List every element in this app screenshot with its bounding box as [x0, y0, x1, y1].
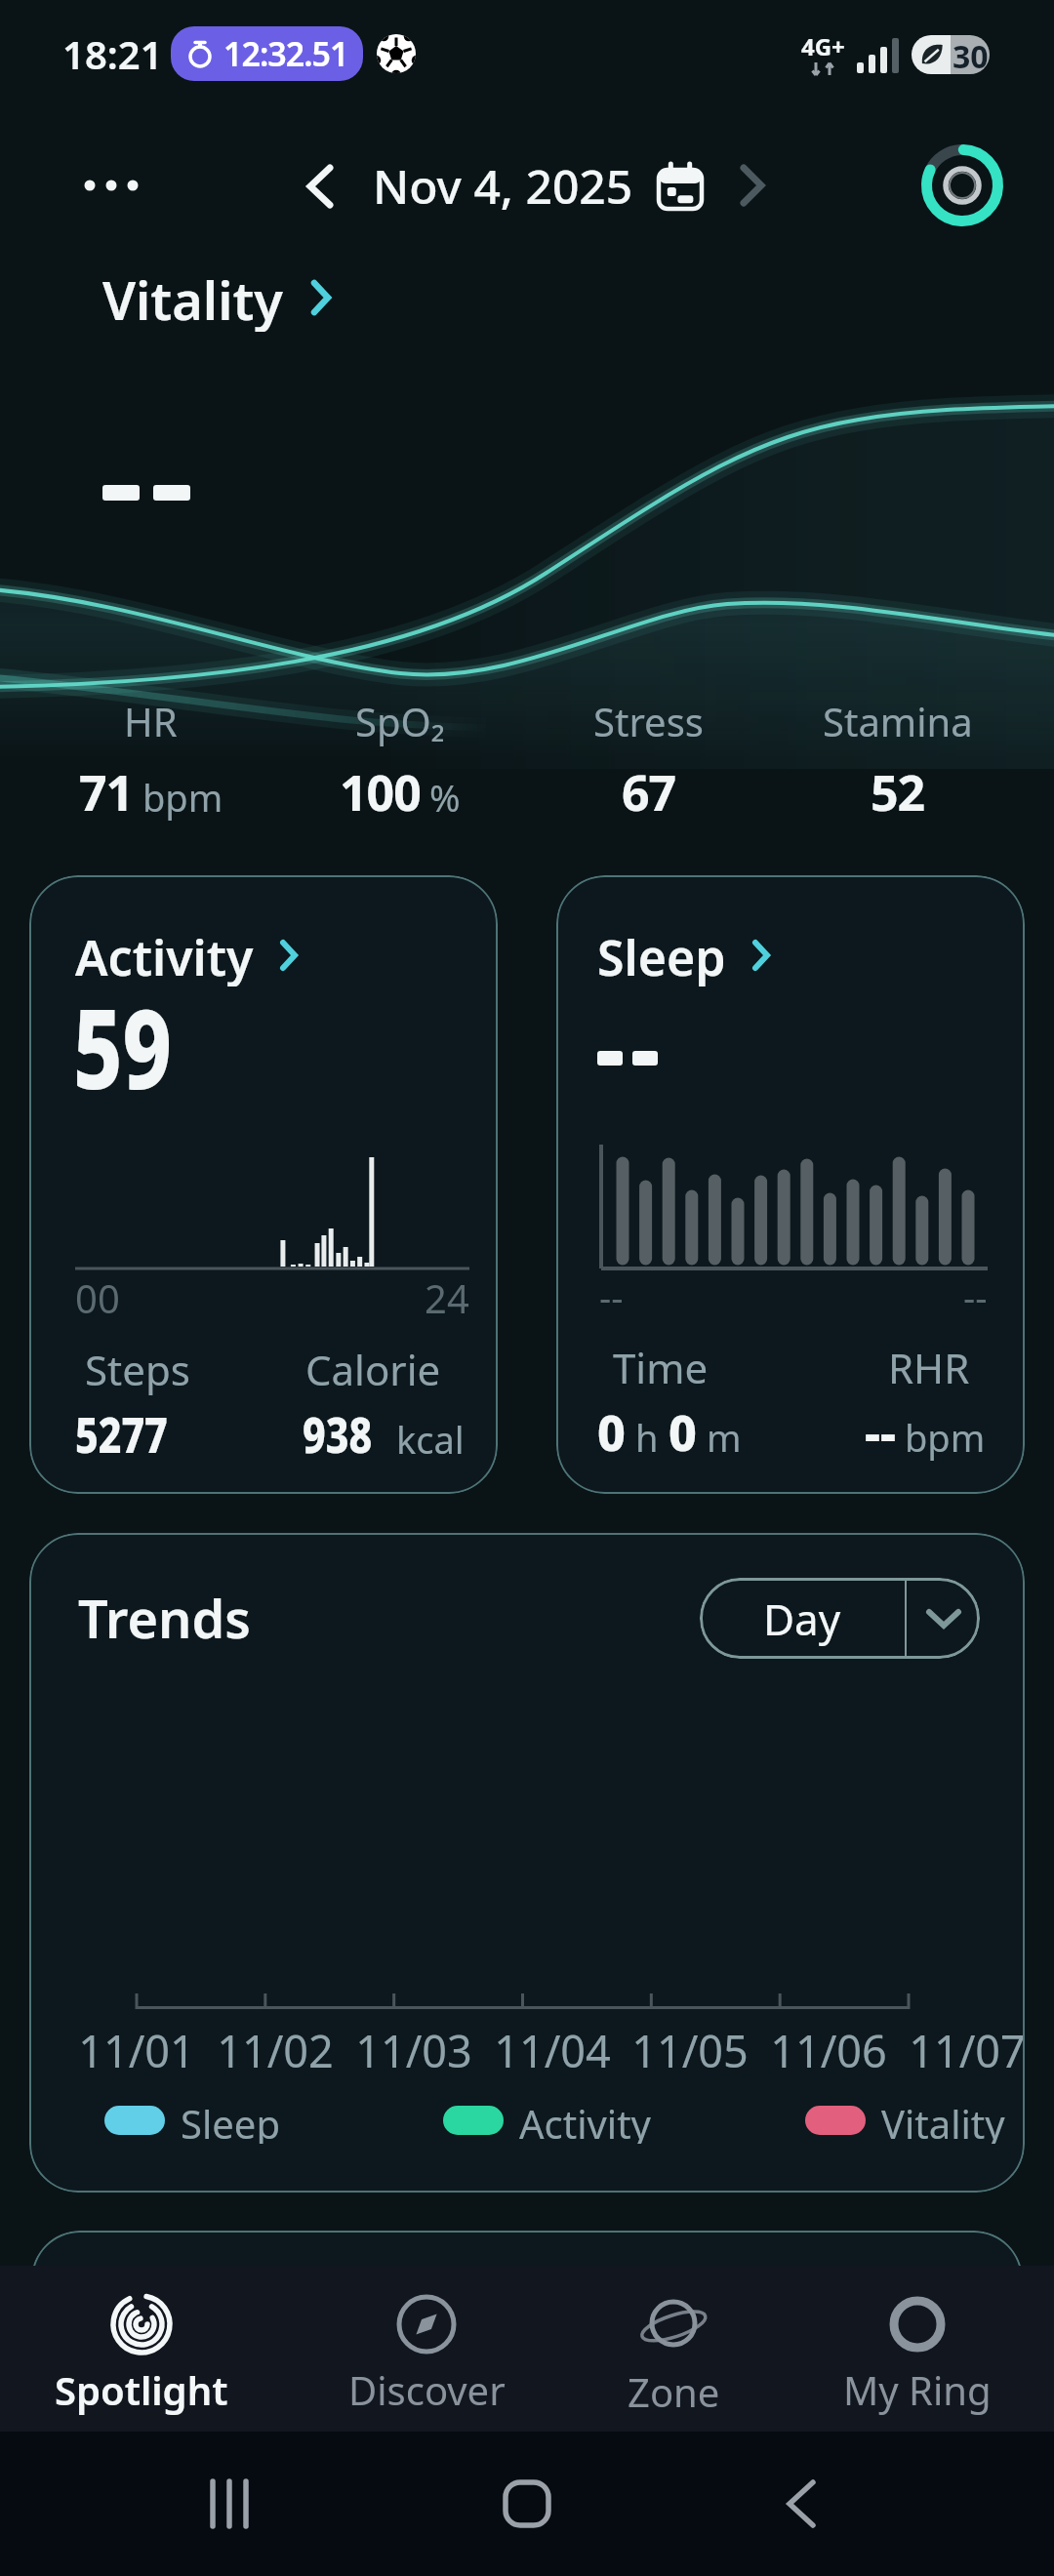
- staticText: --: [963, 1271, 988, 1322]
- button[interactable]: [210, 2479, 255, 2528]
- staticText: m: [697, 1412, 742, 1463]
- staticText: 12:32.51: [223, 31, 348, 76]
- button[interactable]: [742, 166, 763, 205]
- staticText: Spotlight: [55, 2363, 228, 2416]
- button[interactable]: Vitality: [102, 263, 330, 332]
- staticText: Discover: [348, 2363, 506, 2416]
- staticText: Day: [763, 1590, 841, 1648]
- staticText: kcal: [396, 1414, 465, 1465]
- staticText: Activity: [519, 2097, 651, 2144]
- staticText: 00: [75, 1271, 120, 1324]
- staticText: 18:21: [62, 27, 163, 80]
- staticText: 67: [622, 759, 676, 825]
- button[interactable]: [84, 174, 139, 197]
- staticText: Steps: [85, 1342, 190, 1397]
- staticText: 30: [953, 35, 989, 74]
- staticText: 0: [597, 1399, 626, 1466]
- staticText: --: [599, 1271, 624, 1322]
- staticText: 11/03: [350, 2021, 477, 2070]
- staticText: Stress: [593, 695, 704, 747]
- staticText: 5277: [75, 1401, 168, 1468]
- staticText: bpm: [905, 1412, 986, 1463]
- staticText: Calorie: [305, 1342, 441, 1397]
- button[interactable]: [504, 2480, 550, 2527]
- staticText: My Ring: [843, 2363, 992, 2416]
- button[interactable]: Sleep: [556, 875, 1025, 1494]
- button[interactable]: Activity: [29, 875, 498, 1494]
- staticText: 11/07: [904, 2021, 1025, 2070]
- button[interactable]: Discover: [300, 2266, 553, 2432]
- staticText: RHR: [888, 1340, 970, 1395]
- staticText: 11/02: [212, 2021, 339, 2070]
- staticText: --: [865, 1399, 896, 1466]
- staticText: SpO₂: [355, 695, 445, 747]
- staticText: Activity: [75, 924, 254, 986]
- button[interactable]: Spotlight: [15, 2266, 268, 2432]
- staticText: Trends: [78, 1582, 251, 1654]
- button[interactable]: [921, 144, 1003, 226]
- staticText: Vitality: [881, 2097, 1005, 2144]
- staticText: Time: [613, 1340, 709, 1395]
- staticText: 938: [303, 1401, 372, 1468]
- button[interactable]: Nov 4, 2025: [308, 154, 702, 218]
- staticText: 59: [73, 972, 172, 1121]
- staticText: Sleep: [597, 924, 726, 986]
- staticText: Vitality: [102, 263, 283, 332]
- staticText: 11/05: [627, 2021, 753, 2070]
- staticText: 4G+: [801, 30, 845, 62]
- button[interactable]: My Ring: [790, 2266, 1044, 2432]
- staticText: 71: [79, 759, 134, 825]
- button[interactable]: Zone: [547, 2266, 800, 2432]
- staticText: Stamina: [823, 695, 973, 747]
- staticText: 11/04: [489, 2021, 616, 2070]
- button[interactable]: [787, 2479, 816, 2528]
- staticText: HR: [124, 695, 178, 747]
- staticText: 0: [669, 1399, 697, 1466]
- staticText: Sleep: [181, 2097, 280, 2144]
- staticText: Zone: [628, 2365, 720, 2418]
- staticText: 11/06: [765, 2021, 892, 2070]
- button[interactable]: Day: [700, 1578, 980, 1659]
- staticText: Nov 4, 2025: [373, 154, 633, 218]
- staticText: 52: [871, 759, 925, 825]
- staticText: bpm: [142, 772, 223, 823]
- staticText: 24: [425, 1271, 469, 1324]
- staticText: 11/01: [73, 2021, 200, 2070]
- staticText: h: [626, 1412, 669, 1463]
- staticText: %: [429, 772, 461, 823]
- staticText: 100: [340, 759, 421, 825]
